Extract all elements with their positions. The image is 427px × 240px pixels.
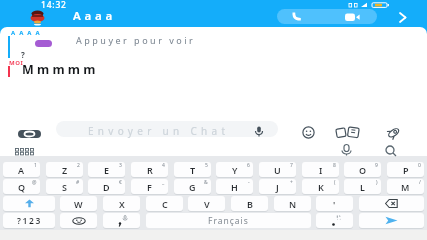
button[interactable]: Y bbox=[216, 162, 253, 177]
staticText: D bbox=[103, 181, 110, 193]
staticText: 1 bbox=[34, 162, 37, 169]
button[interactable]: ?123 bbox=[3, 213, 55, 228]
staticText: 4 bbox=[162, 162, 165, 169]
button[interactable] bbox=[18, 129, 42, 139]
button[interactable]: O bbox=[344, 162, 381, 177]
staticText: Mmmmm bbox=[22, 61, 99, 78]
staticText: K bbox=[318, 181, 324, 193]
staticText: 0 bbox=[418, 162, 421, 169]
staticText: R bbox=[147, 164, 153, 176]
staticText: M bbox=[401, 181, 410, 193]
button[interactable]: X bbox=[103, 196, 140, 211]
staticText: & bbox=[204, 179, 208, 186]
button[interactable]: Appuyer pour voir bbox=[76, 34, 196, 46]
staticText: H bbox=[231, 181, 238, 193]
staticText: / bbox=[419, 179, 421, 186]
button[interactable] bbox=[383, 145, 399, 157]
staticText: N bbox=[289, 198, 297, 210]
staticText: € bbox=[119, 179, 122, 186]
button[interactable]: Français bbox=[146, 213, 311, 228]
staticText: A bbox=[18, 164, 25, 176]
button[interactable]: H bbox=[216, 179, 253, 194]
button[interactable]: L bbox=[344, 179, 381, 194]
staticText: Envoyer un Chat bbox=[88, 124, 230, 138]
button[interactable]: B bbox=[231, 196, 268, 211]
button[interactable] bbox=[103, 213, 140, 228]
button[interactable]: W bbox=[60, 196, 97, 211]
button[interactable] bbox=[359, 213, 424, 228]
staticText: ? bbox=[21, 49, 25, 60]
button[interactable] bbox=[359, 196, 424, 211]
staticText: W bbox=[74, 198, 83, 210]
button[interactable] bbox=[339, 144, 355, 156]
button[interactable] bbox=[3, 196, 55, 211]
staticText: Y bbox=[232, 164, 238, 176]
button[interactable]: M bbox=[387, 179, 424, 194]
button[interactable]: ' bbox=[316, 196, 353, 211]
button[interactable]: R bbox=[131, 162, 168, 177]
button[interactable]: F bbox=[131, 179, 168, 194]
staticText: 9 bbox=[375, 162, 378, 169]
button[interactable]: Z bbox=[46, 162, 83, 177]
button[interactable]: T bbox=[174, 162, 211, 177]
button[interactable] bbox=[29, 8, 46, 25]
button[interactable]: U bbox=[259, 162, 296, 177]
button[interactable]: D bbox=[88, 179, 125, 194]
button[interactable] bbox=[15, 148, 35, 156]
button[interactable] bbox=[56, 121, 278, 137]
staticText: 7 bbox=[290, 162, 293, 169]
button[interactable]: E bbox=[88, 162, 125, 177]
button[interactable]: K bbox=[302, 179, 339, 194]
staticText: B bbox=[247, 198, 253, 210]
staticText: V bbox=[204, 198, 210, 210]
staticText: ' bbox=[333, 198, 336, 210]
staticText: 14:32 bbox=[41, 0, 67, 11]
staticText: T bbox=[190, 164, 196, 176]
button[interactable]: C bbox=[146, 196, 183, 211]
staticText: + bbox=[290, 179, 293, 186]
staticText: J bbox=[276, 181, 279, 193]
staticText: 5 bbox=[205, 162, 208, 169]
button[interactable] bbox=[277, 9, 377, 24]
staticText: - bbox=[248, 179, 250, 186]
button[interactable]: N bbox=[274, 196, 311, 211]
staticText: Q bbox=[18, 181, 26, 193]
staticText: 6 bbox=[247, 162, 250, 169]
staticText: ( bbox=[334, 179, 336, 186]
button[interactable]: P bbox=[387, 162, 424, 177]
staticText: AAAA bbox=[11, 29, 44, 37]
button[interactable]: I bbox=[302, 162, 339, 177]
staticText: Z bbox=[62, 164, 68, 176]
staticText: P bbox=[403, 164, 409, 176]
button[interactable] bbox=[60, 213, 97, 228]
button[interactable] bbox=[35, 40, 52, 47]
staticText: Français bbox=[208, 215, 249, 227]
button[interactable] bbox=[335, 126, 361, 140]
staticText: I bbox=[319, 164, 323, 176]
staticText: U bbox=[274, 164, 281, 176]
staticText: L bbox=[360, 181, 365, 193]
button[interactable] bbox=[316, 213, 353, 228]
staticText: MOI bbox=[9, 59, 24, 67]
staticText: # bbox=[76, 179, 80, 186]
staticText: F bbox=[147, 181, 152, 193]
staticText: O bbox=[359, 164, 367, 176]
button[interactable] bbox=[302, 126, 315, 139]
staticText: ?123 bbox=[17, 215, 42, 227]
button[interactable] bbox=[383, 126, 404, 140]
staticText: 3 bbox=[119, 162, 122, 169]
staticText: C bbox=[162, 198, 168, 210]
staticText: X bbox=[119, 198, 125, 210]
staticText: 8 bbox=[333, 162, 336, 169]
staticText: ) bbox=[376, 179, 378, 186]
staticText: S bbox=[62, 181, 67, 193]
button[interactable]: G bbox=[174, 179, 211, 194]
button[interactable]: S bbox=[46, 179, 83, 194]
button[interactable]: Aaaa bbox=[73, 8, 117, 24]
button[interactable]: V bbox=[188, 196, 225, 211]
button[interactable]: J bbox=[259, 179, 296, 194]
button[interactable]: A bbox=[3, 162, 40, 177]
button[interactable]: Q bbox=[3, 179, 40, 194]
staticText: 2 bbox=[77, 162, 80, 169]
staticText: @ bbox=[32, 179, 37, 186]
